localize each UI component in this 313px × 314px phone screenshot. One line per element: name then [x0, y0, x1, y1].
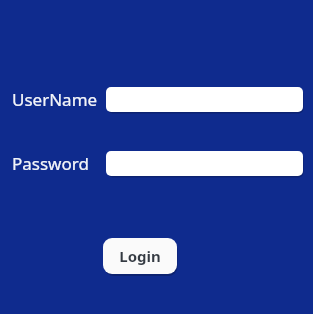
button[interactable]: Password input field [106, 151, 303, 176]
staticText: Login [119, 246, 161, 266]
button[interactable]: UserName input field [106, 87, 303, 112]
staticText: Password [12, 152, 89, 175]
button[interactable]: Login [103, 238, 177, 274]
staticText: UserName [12, 88, 98, 111]
